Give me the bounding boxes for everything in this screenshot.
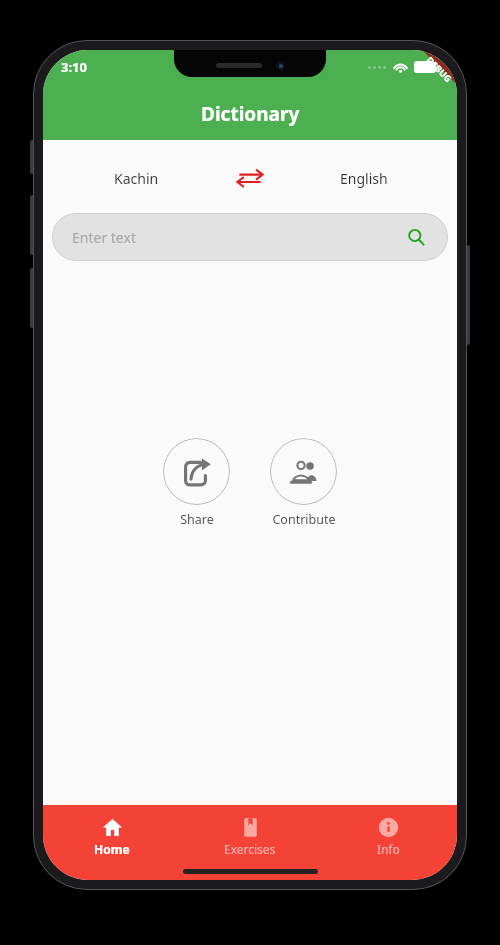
button[interactable]: Kachin	[43, 165, 230, 192]
staticText: Kachin	[114, 169, 159, 188]
button[interactable]: Contribute	[266, 434, 341, 532]
staticText: Info	[377, 841, 400, 857]
button[interactable]: Share	[159, 434, 234, 532]
staticText: 3:10	[61, 58, 87, 76]
button[interactable]: Enter text	[52, 213, 448, 261]
staticText: Exercises	[224, 841, 276, 857]
staticText: Enter text	[72, 228, 136, 247]
button[interactable]: Info	[319, 805, 457, 862]
button[interactable]: Home	[43, 805, 181, 862]
staticText: Dictionary	[201, 101, 300, 127]
staticText: Share	[180, 511, 214, 528]
button[interactable]: Exercises	[181, 805, 319, 862]
staticText: DEBUG	[424, 54, 455, 84]
staticText: Contribute	[272, 511, 336, 528]
button[interactable]: Swap languages	[230, 158, 270, 198]
staticText: Home	[94, 841, 130, 857]
button[interactable]: English	[270, 165, 457, 192]
other: Search	[404, 225, 428, 249]
staticText: English	[340, 169, 388, 188]
